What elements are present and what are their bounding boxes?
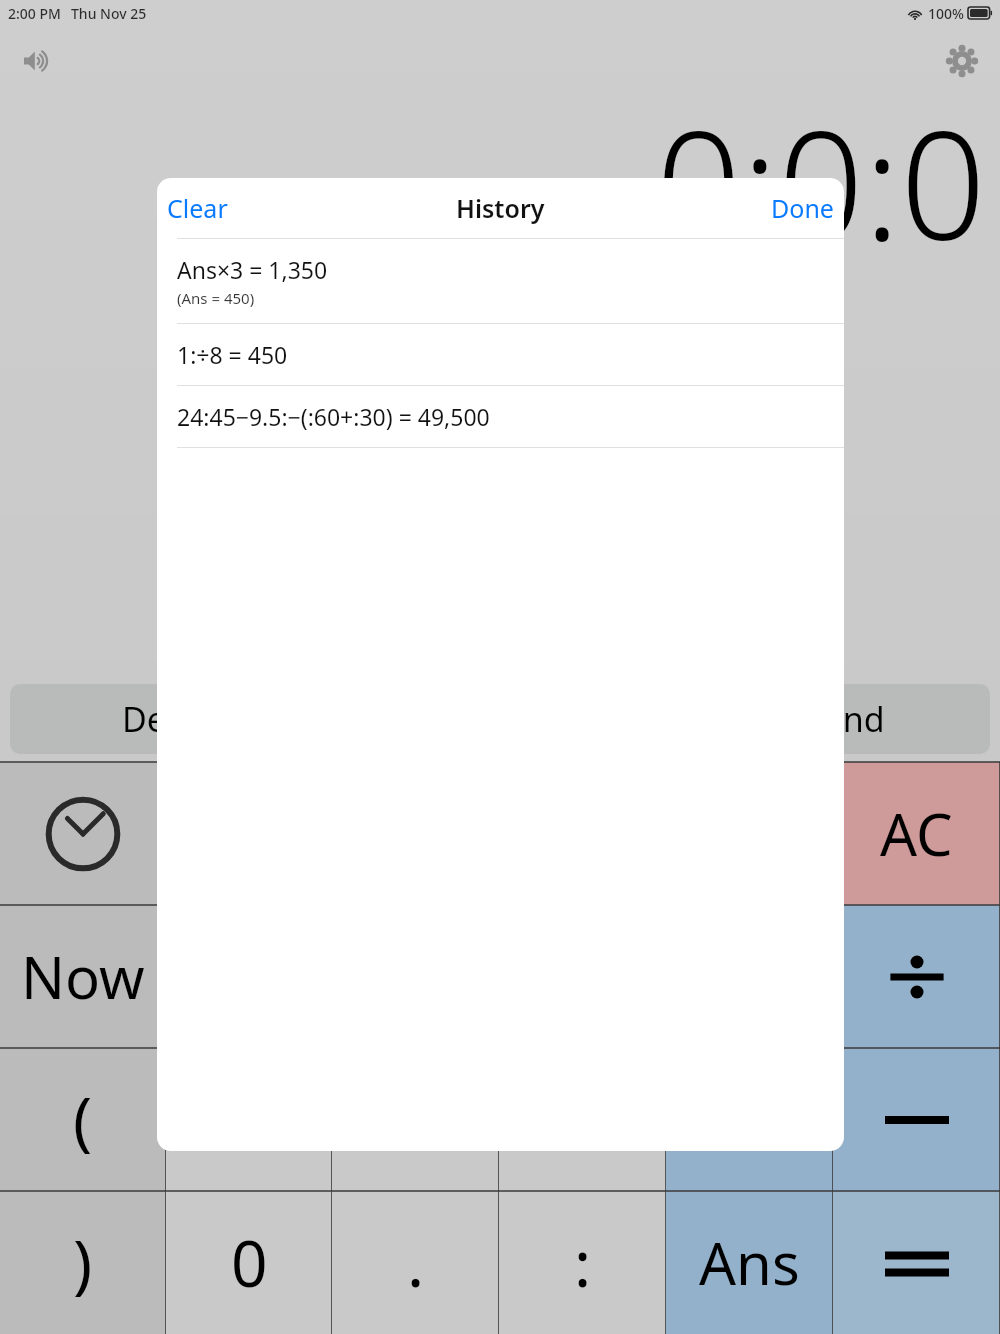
- staticText: History: [456, 191, 545, 225]
- staticText: (: [73, 1076, 93, 1163]
- button[interactable]: Done: [771, 191, 834, 225]
- staticText: .: [407, 1219, 425, 1306]
- button[interactable]: [666, 1048, 833, 1191]
- button[interactable]: Now: [0, 905, 166, 1048]
- button[interactable]: Divide: [833, 905, 1000, 1048]
- button[interactable]: ): [0, 1191, 166, 1334]
- button[interactable]: Ans×3 = 1,350: [157, 239, 844, 323]
- staticText: AC: [880, 794, 953, 873]
- staticText: Ans×3 = 1,350: [177, 254, 328, 285]
- staticText: ): [73, 1219, 93, 1306]
- staticText: 3: [564, 1076, 601, 1163]
- button[interactable]: AC: [833, 762, 1000, 905]
- staticText: 100%: [928, 4, 964, 23]
- staticText: Clear: [167, 191, 228, 225]
- button[interactable]: Deg/H: [10, 684, 990, 754]
- staticText: (Ans = 450): [177, 288, 255, 308]
- button[interactable]: Equals: [833, 1191, 1000, 1334]
- button[interactable]: 24:45−9.5:−(:60+:30) = 49,500: [157, 386, 844, 447]
- staticText: 2: [397, 1076, 434, 1163]
- button[interactable]: 1: [166, 1048, 332, 1191]
- button[interactable]: 1:÷8 = 450: [157, 324, 844, 385]
- staticText: Ans: [699, 1223, 800, 1302]
- staticText: :: [574, 1219, 592, 1306]
- staticText: 2:00 PM: [8, 4, 61, 23]
- staticText: Now: [21, 937, 145, 1016]
- button[interactable]: Ans: [666, 1191, 833, 1334]
- button[interactable]: 2: [332, 1048, 499, 1191]
- staticText: Done: [771, 191, 834, 225]
- button[interactable]: (: [0, 1048, 166, 1191]
- staticText: 0: [231, 1219, 268, 1306]
- staticText: 1: [231, 1076, 268, 1163]
- staticText: 0:0:0: [655, 80, 986, 270]
- staticText: 24:45−9.5:−(:60+:30) = 49,500: [177, 401, 490, 432]
- button[interactable]: Sound: [14, 39, 58, 83]
- button[interactable]: :: [499, 1191, 666, 1334]
- staticText: Thu Nov 25: [71, 4, 147, 23]
- button[interactable]: Clear: [167, 191, 228, 225]
- button[interactable]: Clock: [0, 762, 166, 905]
- button[interactable]: 0: [166, 1191, 332, 1334]
- button[interactable]: Minus: [833, 1048, 1000, 1191]
- button[interactable]: 3: [499, 1048, 666, 1191]
- staticText: Deg/H: [122, 696, 225, 742]
- staticText: 1:÷8 = 450: [177, 339, 288, 370]
- button[interactable]: Settings: [938, 37, 986, 85]
- button[interactable]: .: [332, 1191, 499, 1334]
- staticText: Second: [768, 696, 885, 742]
